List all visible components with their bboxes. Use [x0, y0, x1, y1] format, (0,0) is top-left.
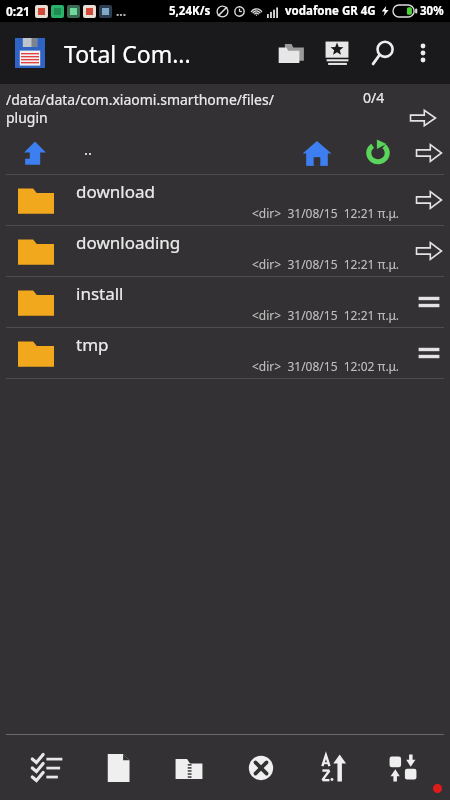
staticText: /data/data/com.xiaomi.smarthome/files/ p… — [6, 90, 274, 127]
button[interactable]: Scroll right — [408, 132, 450, 174]
button[interactable]: Folders — [268, 30, 314, 76]
button[interactable]: tmp — [0, 328, 408, 378]
button[interactable]: Scroll right — [408, 175, 450, 225]
button[interactable]: Exchange — [375, 740, 431, 796]
staticText: Total Com... — [64, 38, 191, 69]
staticText: 30% — [420, 3, 444, 19]
staticText: <dir> 31/08/15 12:21 π.μ. — [252, 256, 400, 272]
button[interactable]: Options — [408, 328, 450, 378]
staticText: vodafone GR 4G — [285, 3, 376, 19]
staticText: 0/4 — [363, 88, 385, 107]
button[interactable]: Sort — [304, 740, 360, 796]
staticText: download — [76, 180, 155, 203]
staticText: <dir> 31/08/15 12:02 π.μ. — [252, 358, 400, 374]
button[interactable]: Scroll right — [408, 226, 450, 276]
button[interactable]: Parent folder — [0, 132, 70, 174]
button[interactable]: download — [0, 175, 408, 225]
button[interactable]: Total Commander — [10, 33, 50, 73]
staticText: 5,24K/s — [169, 3, 211, 19]
button[interactable]: More options — [406, 36, 440, 70]
button[interactable]: Bookmarks — [314, 30, 360, 76]
button[interactable]: Scroll right — [402, 84, 444, 132]
staticText: ... — [116, 3, 127, 19]
button[interactable]: Options — [408, 277, 450, 327]
button[interactable]: .. — [70, 132, 286, 174]
button[interactable]: Home — [286, 132, 348, 174]
button[interactable]: install — [0, 277, 408, 327]
button[interactable]: Close — [233, 740, 289, 796]
button[interactable]: Search — [360, 30, 406, 76]
button[interactable]: Refresh — [348, 132, 408, 174]
staticText: <dir> 31/08/15 12:21 π.μ. — [252, 307, 400, 323]
staticText: install — [76, 282, 124, 305]
button[interactable]: Select all — [19, 740, 75, 796]
button[interactable]: Zip — [161, 740, 217, 796]
button[interactable]: New file — [90, 740, 146, 796]
staticText: tmp — [76, 333, 109, 356]
staticText: .. — [84, 139, 93, 159]
button[interactable]: downloading — [0, 226, 408, 276]
staticText: 0:21 — [6, 3, 30, 19]
staticText: downloading — [76, 231, 181, 254]
staticText: <dir> 31/08/15 12:21 π.μ. — [252, 205, 400, 221]
